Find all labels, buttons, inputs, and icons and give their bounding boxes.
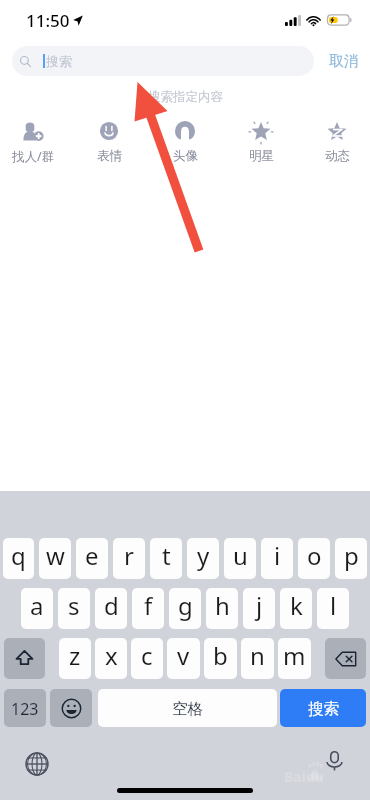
- button[interactable]: u: [224, 538, 256, 579]
- button[interactable]: h: [206, 588, 238, 629]
- staticText: m: [283, 639, 306, 672]
- button[interactable]: 明星: [223, 121, 299, 169]
- button[interactable]: p: [335, 538, 367, 579]
- staticText: 取消: [329, 52, 359, 71]
- button[interactable]: e: [76, 538, 108, 579]
- button[interactable]: Voice input: [324, 751, 344, 771]
- staticText: 表情: [97, 148, 122, 164]
- staticText: 动态: [325, 148, 350, 164]
- button[interactable]: f: [132, 588, 164, 629]
- staticText: j: [256, 589, 263, 622]
- staticText: x: [105, 639, 118, 672]
- button[interactable]: 搜索: [280, 689, 366, 727]
- staticText: y: [197, 539, 210, 572]
- staticText: l: [330, 589, 337, 622]
- staticText: n: [250, 639, 265, 672]
- button[interactable]: x: [95, 638, 127, 679]
- staticText: z: [69, 639, 81, 672]
- button[interactable]: b: [204, 638, 237, 679]
- staticText: 空格: [172, 699, 203, 719]
- button[interactable]: o: [298, 538, 330, 579]
- staticText: g: [178, 589, 193, 622]
- button[interactable]: i: [261, 538, 293, 579]
- button[interactable]: t: [150, 538, 182, 579]
- button[interactable]: Emoji: [50, 689, 92, 727]
- staticText: 11:50: [26, 9, 70, 32]
- button[interactable]: 头像: [147, 121, 223, 169]
- staticText: o: [307, 539, 322, 572]
- button[interactable]: s: [58, 588, 90, 629]
- staticText: b: [213, 639, 228, 672]
- button[interactable]: q: [3, 538, 34, 579]
- staticText: Baidu: [284, 767, 324, 786]
- button[interactable]: 找人/群: [0, 121, 71, 169]
- button[interactable]: l: [317, 588, 349, 629]
- staticText: c: [141, 639, 153, 672]
- staticText: t: [162, 539, 171, 572]
- staticText: w: [46, 539, 65, 572]
- staticText: 搜索指定内容: [148, 89, 223, 105]
- staticText: i: [274, 539, 281, 572]
- button[interactable]: v: [167, 638, 200, 679]
- button[interactable]: k: [280, 588, 312, 629]
- button[interactable]: c: [131, 638, 163, 679]
- staticText: 头像: [173, 148, 198, 164]
- button[interactable]: z: [59, 638, 91, 679]
- button[interactable]: w: [39, 538, 71, 579]
- button[interactable]: 123: [4, 689, 46, 727]
- button[interactable]: 空格: [98, 689, 277, 727]
- button[interactable]: 搜索: [12, 46, 314, 76]
- button[interactable]: 取消: [322, 46, 366, 76]
- staticText: v: [177, 639, 190, 672]
- button[interactable]: d: [95, 588, 127, 629]
- staticText: p: [344, 539, 359, 572]
- staticText: e: [85, 539, 99, 572]
- button[interactable]: g: [169, 588, 201, 629]
- staticText: u: [233, 539, 248, 572]
- staticText: k: [290, 589, 303, 622]
- button[interactable]: r: [113, 538, 145, 579]
- button[interactable]: y: [187, 538, 219, 579]
- staticText: 明星: [249, 148, 274, 164]
- button[interactable]: Shift: [4, 638, 45, 679]
- staticText: q: [11, 539, 26, 572]
- staticText: f: [144, 589, 153, 622]
- staticText: s: [68, 589, 80, 622]
- button[interactable]: m: [278, 638, 311, 679]
- button[interactable]: 动态: [299, 121, 370, 169]
- button[interactable]: Backspace: [325, 638, 366, 679]
- button[interactable]: n: [241, 638, 274, 679]
- staticText: h: [215, 589, 230, 622]
- button[interactable]: Change keyboard: [25, 752, 49, 776]
- button[interactable]: a: [21, 588, 53, 629]
- staticText: d: [104, 589, 119, 622]
- staticText: a: [30, 589, 44, 622]
- staticText: 搜索: [308, 699, 339, 719]
- button[interactable]: 表情: [71, 121, 147, 169]
- staticText: 找人/群: [12, 148, 55, 165]
- staticText: 搜索: [46, 53, 72, 69]
- staticText: r: [124, 539, 134, 572]
- staticText: 123: [11, 698, 39, 720]
- button[interactable]: j: [243, 588, 275, 629]
